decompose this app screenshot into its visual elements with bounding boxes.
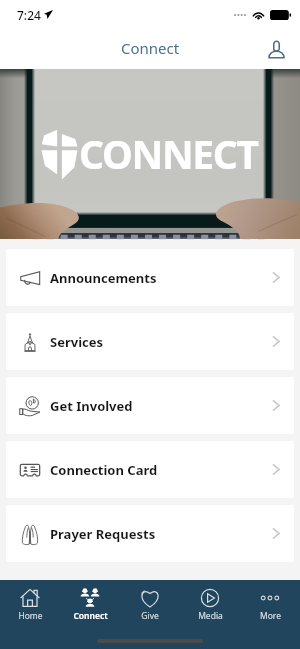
button[interactable]: Prayer Requests xyxy=(6,505,294,562)
button[interactable]: Get Involved xyxy=(6,377,294,434)
button[interactable]: Connection Card xyxy=(6,441,294,498)
staticText: Prayer Requests xyxy=(50,525,156,543)
button[interactable]: Home xyxy=(0,588,60,622)
staticText: CONNECT xyxy=(79,127,258,180)
staticText: Connect xyxy=(73,610,108,622)
staticText: Give xyxy=(141,610,159,622)
staticText: More xyxy=(260,610,281,622)
staticText: Get Involved xyxy=(50,397,133,415)
button[interactable]: Media xyxy=(180,588,240,622)
button[interactable]: Profile xyxy=(259,32,293,66)
button[interactable]: Give xyxy=(120,588,180,622)
button[interactable]: Announcements xyxy=(6,249,294,306)
staticText: Connection Card xyxy=(50,461,158,479)
button[interactable]: Connect xyxy=(60,588,120,622)
button[interactable]: Services xyxy=(6,313,294,370)
staticText: Connect xyxy=(121,38,180,58)
staticText: Services xyxy=(50,333,104,351)
staticText: Home xyxy=(18,610,43,622)
staticText: 7:24 xyxy=(17,7,41,23)
staticText: Media xyxy=(198,610,223,622)
staticText: Announcements xyxy=(50,269,157,287)
button[interactable]: More xyxy=(240,588,300,622)
